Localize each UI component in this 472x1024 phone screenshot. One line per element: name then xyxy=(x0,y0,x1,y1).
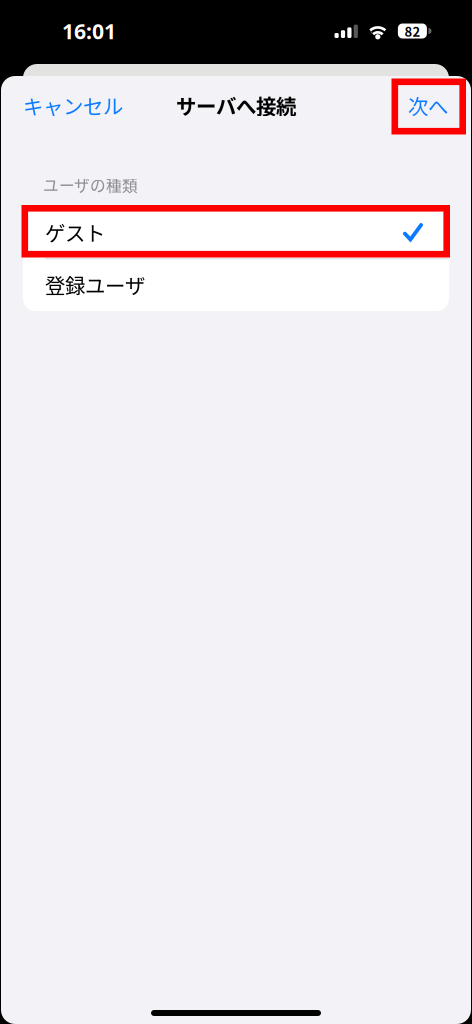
staticText: サーバへ接続 xyxy=(176,91,296,120)
staticText: 16:01 xyxy=(62,17,116,45)
button[interactable]: キャンセル xyxy=(1,78,145,133)
staticText: 次へ xyxy=(408,91,448,120)
staticText: ユーザの種類 xyxy=(43,173,138,196)
staticText: ゲスト xyxy=(45,217,105,247)
button[interactable]: 登録ユーザ xyxy=(23,258,449,311)
staticText: 82 xyxy=(404,22,420,40)
staticText: キャンセル xyxy=(23,91,123,120)
button[interactable]: 次へ xyxy=(391,74,471,137)
staticText: 登録ユーザ xyxy=(45,270,145,299)
button[interactable]: ゲスト xyxy=(23,206,449,258)
